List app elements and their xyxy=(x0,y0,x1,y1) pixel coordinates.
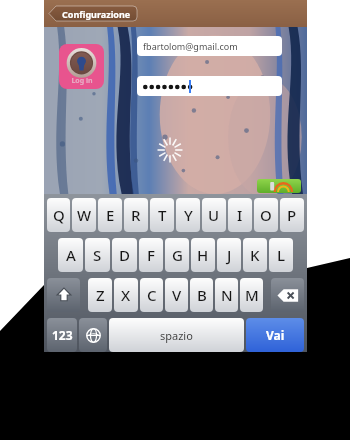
button[interactable]: C xyxy=(140,278,163,312)
staticText: A xyxy=(66,245,76,265)
button[interactable]: E xyxy=(98,198,122,232)
staticText: W xyxy=(77,205,92,225)
button[interactable]: spazio xyxy=(109,318,244,352)
button[interactable]: B xyxy=(190,278,213,312)
staticText: 123 xyxy=(52,327,73,343)
staticText: P xyxy=(287,205,297,225)
button[interactable]: N xyxy=(215,278,238,312)
button[interactable]: I xyxy=(228,198,252,232)
button[interactable]: V xyxy=(165,278,188,312)
staticText: D xyxy=(119,245,130,265)
staticText: K xyxy=(250,245,260,265)
staticText: F xyxy=(147,245,155,265)
button[interactable]: P xyxy=(280,198,304,232)
staticText: B xyxy=(197,285,207,305)
staticText: I xyxy=(237,205,243,225)
button[interactable]: Z xyxy=(88,278,112,312)
staticText: Configurazione xyxy=(62,8,131,20)
button[interactable]: Log in app icon xyxy=(59,44,104,89)
button[interactable]: U xyxy=(202,198,226,232)
button[interactable]: D xyxy=(112,238,137,272)
button[interactable]: W xyxy=(72,198,96,232)
button[interactable]: S xyxy=(85,238,110,272)
staticText: T xyxy=(158,205,167,225)
staticText: spazio xyxy=(160,328,193,343)
staticText: Vai xyxy=(266,327,285,343)
staticText: S xyxy=(93,245,102,265)
staticText: Z xyxy=(96,285,105,305)
button[interactable]: G xyxy=(165,238,189,272)
staticText: C xyxy=(147,285,157,305)
staticText: N xyxy=(221,285,233,305)
staticText: V xyxy=(172,285,182,305)
staticText: X xyxy=(121,285,131,305)
button[interactable]: F xyxy=(139,238,163,272)
button[interactable]: A xyxy=(58,238,83,272)
button[interactable]: T xyxy=(150,198,174,232)
button[interactable]: Q xyxy=(47,198,70,232)
staticText: Q xyxy=(53,205,65,225)
button[interactable]: H xyxy=(191,238,215,272)
button[interactable]: Go xyxy=(257,179,301,193)
button[interactable]: L xyxy=(269,238,293,272)
staticText: G xyxy=(172,245,183,265)
button[interactable] xyxy=(137,76,282,96)
button[interactable]: Y xyxy=(176,198,200,232)
button[interactable]: Shift xyxy=(47,278,80,312)
button[interactable]: X xyxy=(114,278,138,312)
staticText: E xyxy=(106,205,115,225)
staticText: Y xyxy=(184,205,193,225)
staticText: J xyxy=(227,245,232,265)
staticText: R xyxy=(131,205,141,225)
button[interactable]: Change language xyxy=(79,318,107,352)
staticText: H xyxy=(197,245,209,265)
other: Loading xyxy=(157,137,183,163)
staticText: L xyxy=(277,245,286,265)
button[interactable]: 123 xyxy=(47,318,77,352)
button[interactable]: O xyxy=(254,198,278,232)
button[interactable]: J xyxy=(217,238,241,272)
button[interactable]: Backspace xyxy=(271,278,304,312)
button[interactable]: K xyxy=(243,238,267,272)
staticText: Log in xyxy=(71,76,93,86)
button[interactable]: R xyxy=(124,198,148,232)
staticText: fbartolom@gmail.com xyxy=(143,40,238,52)
staticText: O xyxy=(260,205,272,225)
staticText: M xyxy=(245,285,259,305)
staticText: U xyxy=(208,205,220,225)
button[interactable]: fbartolom@gmail.com xyxy=(137,36,282,56)
button[interactable]: Vai xyxy=(246,318,304,352)
button[interactable]: M xyxy=(240,278,263,312)
button[interactable]: Back to Configurazione xyxy=(49,4,137,23)
